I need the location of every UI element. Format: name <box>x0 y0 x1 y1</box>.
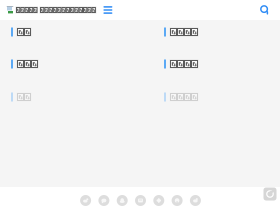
button[interactable]: Search <box>259 4 271 16</box>
button[interactable] <box>11 91 141 103</box>
button[interactable]: Menu <box>101 4 114 16</box>
button[interactable] <box>164 58 264 70</box>
button[interactable] <box>11 26 141 38</box>
button[interactable]: Copy link <box>135 195 146 206</box>
button[interactable] <box>164 26 264 38</box>
button[interactable]: Share on Weibo <box>80 195 91 206</box>
button[interactable]: More sharing options <box>190 195 201 206</box>
button[interactable]: Share on QQ <box>117 195 128 206</box>
button[interactable] <box>6 5 96 14</box>
button[interactable]: Add to favourites <box>153 195 164 206</box>
button[interactable] <box>164 91 264 103</box>
button[interactable]: Share on WeChat <box>98 195 109 206</box>
button[interactable] <box>11 58 141 70</box>
button[interactable]: Back to top <box>263 187 276 200</box>
button[interactable]: Share on Douban <box>172 195 183 206</box>
